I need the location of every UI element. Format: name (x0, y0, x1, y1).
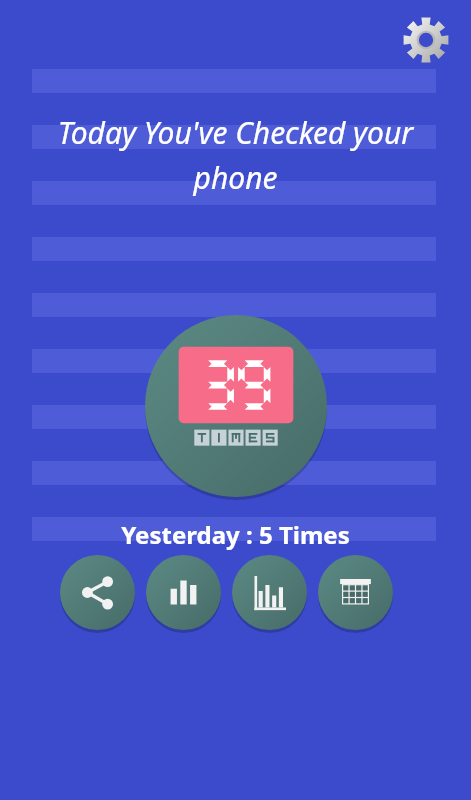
button[interactable]: Calendar (318, 555, 393, 630)
button[interactable]: Settings (400, 14, 452, 66)
staticText: Today You've Checked your phone (22, 112, 449, 197)
button[interactable] (145, 315, 327, 497)
button[interactable]: Graph (232, 555, 307, 630)
staticText: Yesterday : 5 Times (0, 518, 471, 551)
button[interactable]: Share (60, 555, 135, 630)
button[interactable]: Statistics (146, 555, 221, 630)
